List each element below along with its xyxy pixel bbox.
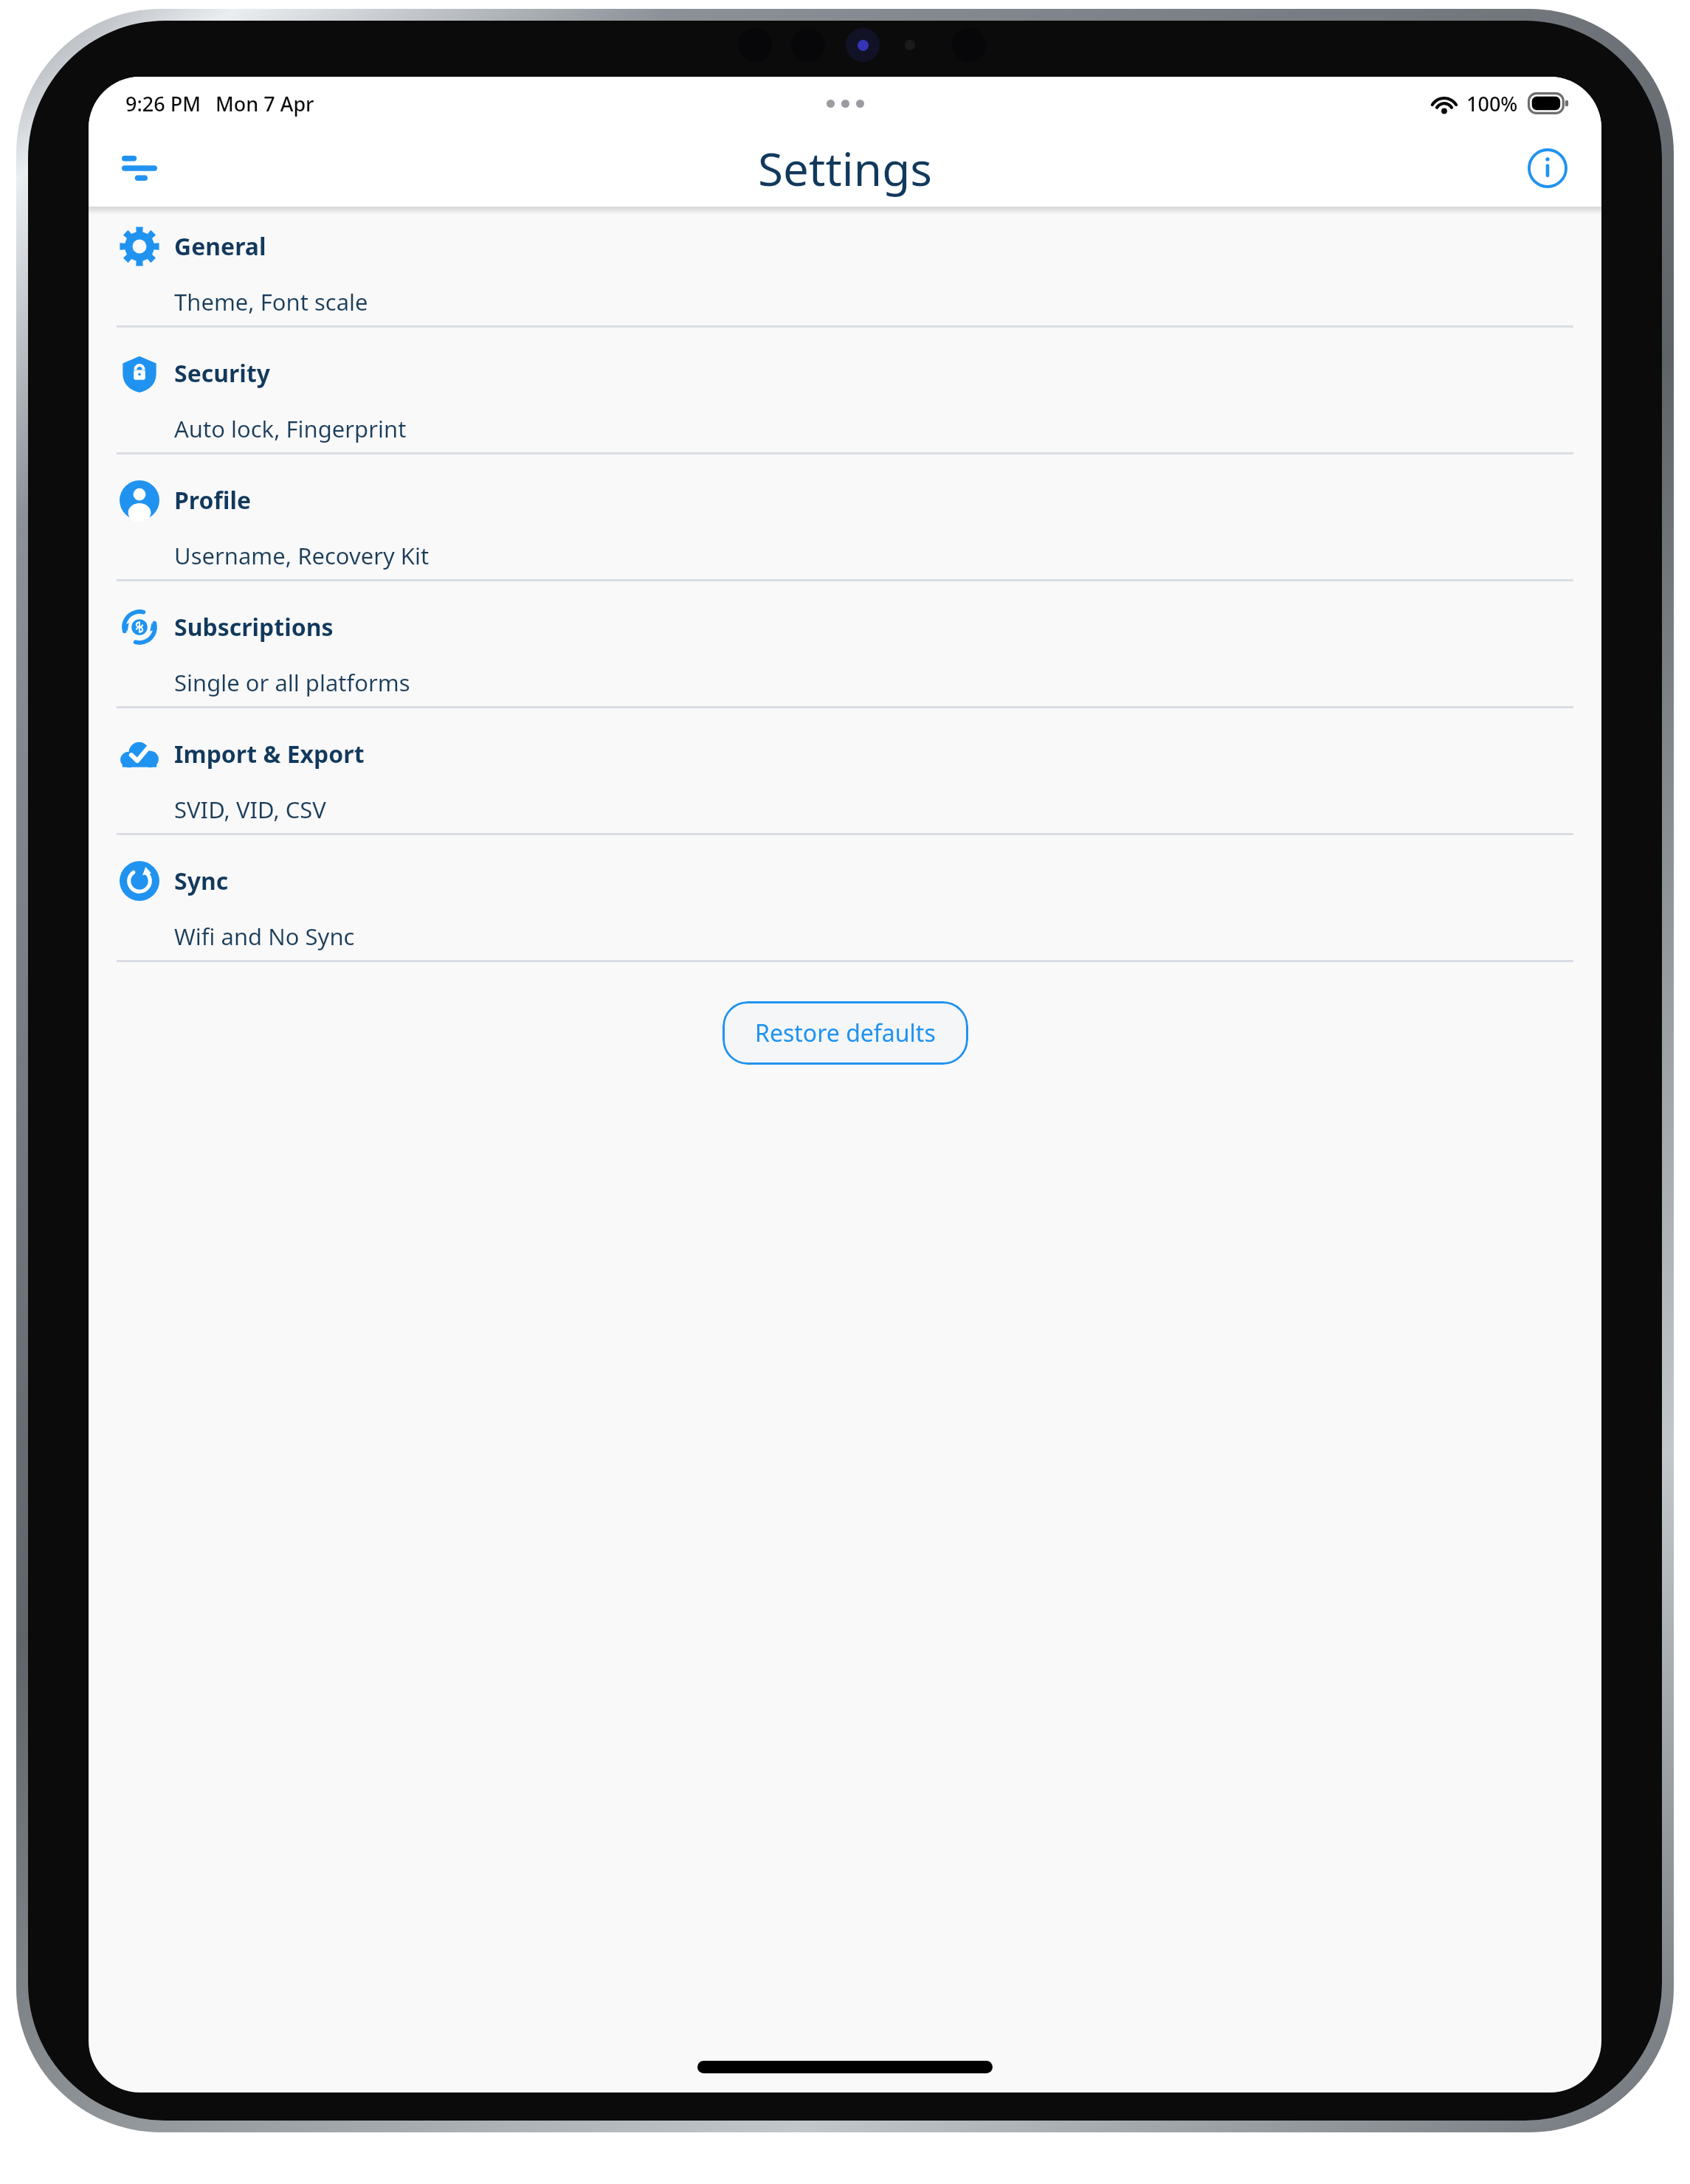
staticText: Wifi and No Sync bbox=[174, 921, 355, 952]
staticText: SVID, VID, CSV bbox=[174, 794, 326, 825]
button[interactable]: Open navigation menu bbox=[103, 132, 176, 204]
button[interactable]: General bbox=[89, 215, 1601, 342]
staticText: Settings bbox=[758, 137, 932, 199]
staticText: Auto lock, Fingerprint bbox=[174, 413, 407, 444]
staticText: Import & Export bbox=[174, 738, 365, 770]
button[interactable]: Security bbox=[89, 342, 1601, 469]
staticText: Subscriptions bbox=[174, 611, 334, 643]
button[interactable]: Profile bbox=[89, 469, 1601, 595]
staticText: Profile bbox=[174, 484, 252, 516]
staticText: Sync bbox=[174, 865, 229, 897]
staticText: Username, Recovery Kit bbox=[174, 540, 430, 571]
button[interactable]: Sync bbox=[89, 849, 1601, 976]
staticText: 9:26 PM bbox=[125, 90, 201, 117]
staticText: Mon 7 Apr bbox=[215, 90, 314, 117]
staticText: Restore defaults bbox=[755, 1017, 936, 1049]
button[interactable]: Information bbox=[1513, 134, 1582, 203]
button[interactable]: Subscriptions bbox=[89, 595, 1601, 722]
staticText: General bbox=[174, 230, 266, 263]
button[interactable]: Import & Export bbox=[89, 722, 1601, 849]
staticText: Security bbox=[174, 357, 271, 390]
staticText: Single or all platforms bbox=[174, 667, 410, 698]
staticText: 100% bbox=[1466, 90, 1518, 117]
staticText: Theme, Font scale bbox=[174, 286, 368, 317]
button[interactable]: Restore defaults bbox=[722, 1001, 968, 1065]
